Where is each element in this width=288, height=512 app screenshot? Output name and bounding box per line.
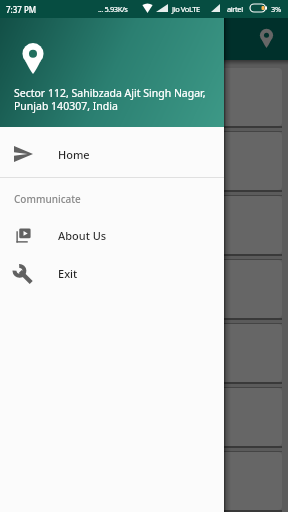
button[interactable] (6, 324, 282, 382)
button[interactable]: Exit (0, 254, 224, 292)
button[interactable] (6, 68, 282, 126)
staticText: airtel (227, 4, 243, 14)
staticText: Communicate (14, 192, 81, 206)
button[interactable] (6, 452, 282, 510)
button[interactable] (6, 132, 282, 190)
button[interactable] (6, 260, 282, 318)
staticText: About Us (58, 228, 107, 243)
staticText: 7:37 PM (6, 4, 37, 15)
staticText: 3% (271, 4, 281, 14)
staticText: Jio VoLTE (172, 4, 200, 14)
staticText: ... 5.93K/s (98, 4, 128, 14)
button[interactable]: Home (0, 135, 224, 173)
staticText: Home (58, 147, 90, 162)
staticText: Exit (58, 266, 78, 281)
button[interactable] (6, 388, 282, 446)
button[interactable]: About Us (0, 216, 224, 254)
staticText: Sector 112, Sahibzada Ajit Singh Nagar, … (14, 86, 206, 113)
button[interactable] (256, 28, 276, 48)
button[interactable] (6, 196, 282, 254)
